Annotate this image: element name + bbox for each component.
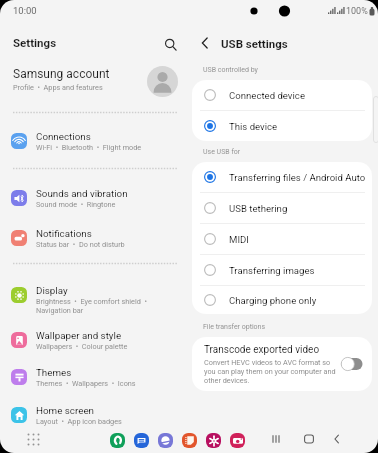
staticText: Sound mode • Ringtone [36, 200, 116, 209]
staticText: Brightness • Eye comfort shield • [36, 297, 147, 306]
button[interactable]: Notifications [0, 226, 190, 259]
staticText: Convert HEVC videos to AVC format so you… [204, 358, 336, 385]
button[interactable]: Transcode exported video toggle [341, 357, 363, 371]
button[interactable]: Galaxy Store [206, 433, 221, 448]
staticText: Profile • Apps and features [13, 83, 103, 92]
button[interactable]: USB tethering [192, 193, 372, 223]
staticText: Connections [36, 131, 91, 142]
staticText: Settings [13, 36, 57, 49]
button[interactable]: Sounds and vibration [0, 186, 190, 219]
staticText: Themes [36, 367, 72, 378]
button[interactable]: Messages [134, 433, 149, 448]
staticText: USB tethering [229, 203, 288, 214]
button[interactable]: Display [0, 283, 190, 316]
button[interactable]: All apps [26, 432, 40, 446]
staticText: Themes • Wallpapers • Icons [36, 379, 136, 388]
button[interactable]: Transcode exported video [192, 337, 372, 391]
staticText: Transferring files / Android Auto [229, 172, 366, 183]
staticText: Wallpaper and style [36, 330, 122, 341]
button[interactable]: Back [328, 430, 346, 448]
staticText: File transfer options [203, 323, 266, 331]
button[interactable]: Phone [110, 433, 125, 448]
staticText: Charging phone only [229, 295, 317, 306]
button[interactable]: Themes [0, 365, 190, 398]
button[interactable]: Camera [230, 433, 245, 448]
button[interactable]: This device [192, 111, 372, 141]
button[interactable]: Recents [267, 430, 285, 448]
staticText: Display [36, 285, 68, 296]
button[interactable]: Transferring images [192, 255, 372, 285]
button[interactable]: Internet [158, 433, 173, 448]
button[interactable]: Search [159, 33, 181, 55]
staticText: Transcode exported video [204, 344, 320, 356]
staticText: Layout • App icon badges [36, 417, 122, 426]
button[interactable]: Connections [0, 129, 190, 162]
staticText: Home screen [36, 405, 95, 416]
staticText: Samsung account [13, 67, 110, 81]
button[interactable]: Notes [182, 433, 197, 448]
staticText: Notifications [36, 228, 92, 239]
button[interactable]: Home screen [0, 403, 190, 436]
staticText: Navigation bar [36, 306, 84, 315]
button[interactable]: Back [194, 32, 216, 54]
staticText: USB controlled by [203, 66, 258, 74]
button[interactable]: Wallpaper and style [0, 328, 190, 361]
staticText: Use USB for [203, 148, 241, 156]
button[interactable]: Charging phone only [192, 286, 372, 314]
staticText: Wallpapers • Colour palette [36, 342, 128, 351]
staticText: Connected device [229, 90, 305, 101]
button[interactable]: Home [300, 430, 318, 448]
staticText: Transferring images [229, 265, 315, 276]
staticText: MIDI [229, 234, 249, 245]
staticText: Wi-Fi • Bluetooth • Flight mode [36, 143, 142, 152]
button[interactable]: Samsung account [0, 60, 190, 104]
staticText: USB settings [221, 37, 288, 50]
staticText: 10:00 [13, 5, 37, 16]
button[interactable]: Connected device [192, 80, 372, 110]
staticText: Sounds and vibration [36, 188, 128, 199]
button[interactable]: Transferring files / Android Auto [192, 162, 372, 192]
staticText: This device [229, 121, 278, 132]
staticText: Status bar • Do not disturb [36, 240, 125, 249]
staticText: 100% [346, 6, 368, 17]
button[interactable]: MIDI [192, 224, 372, 254]
